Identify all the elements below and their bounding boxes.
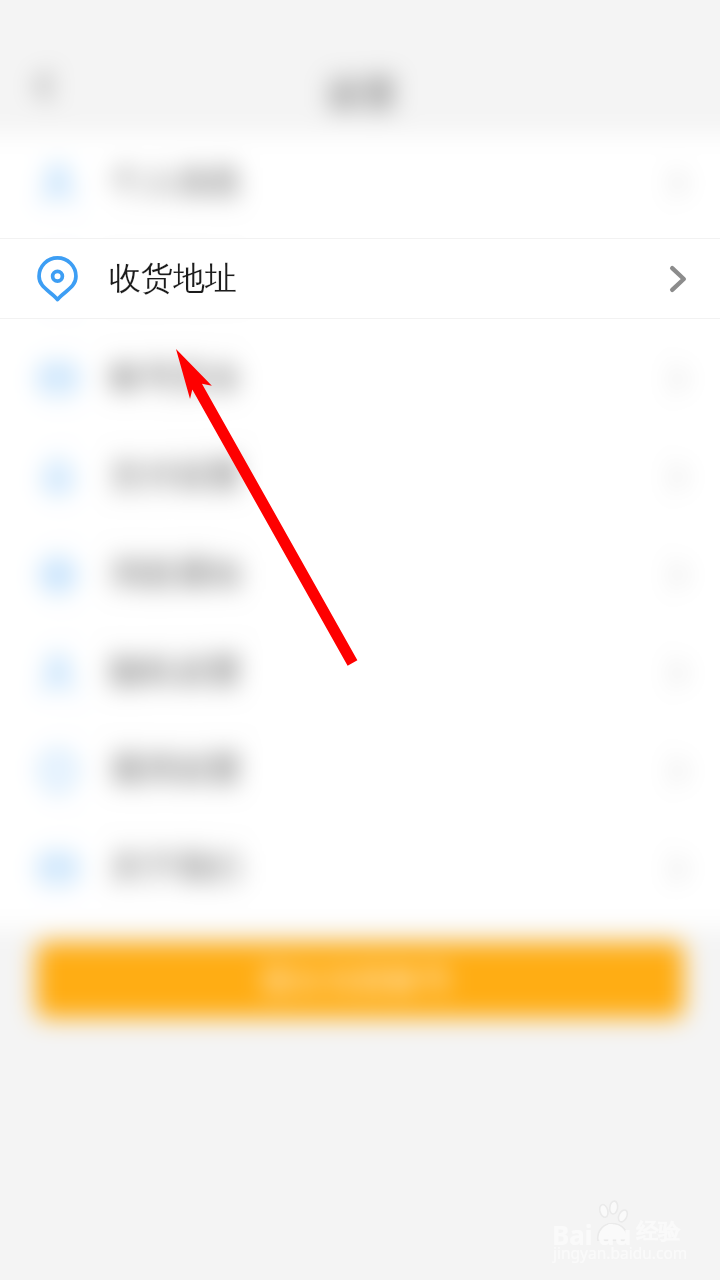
button[interactable]: Back [16,58,72,114]
staticText: 通用设置 [109,749,241,791]
button[interactable]: 收货地址 [0,238,720,319]
staticText: 退出当前账号 [260,960,452,1000]
button[interactable]: 关于我们 [0,820,720,918]
button[interactable]: 隐私设置 [0,624,720,722]
staticText: 隐私设置 [109,651,241,693]
staticText: 设置 [326,71,398,116]
staticText: 支付设置 [109,455,241,497]
staticText: 个人信息 [109,161,241,203]
button[interactable]: 消息通知 [0,526,720,624]
button[interactable]: 退出当前账号 [36,942,684,1018]
button[interactable]: 账号安全 [0,330,720,428]
staticText: 收货地址 [109,258,237,298]
button[interactable]: 通用设置 [0,722,720,820]
staticText: 收货地址 [109,259,241,301]
staticText: 关于我们 [109,847,241,889]
staticText: 消息通知 [109,553,241,595]
button[interactable]: 个人信息 [0,134,720,232]
button[interactable]: 收货地址 [0,232,720,330]
button[interactable]: 支付设置 [0,428,720,526]
staticText: 账号安全 [109,357,241,399]
staticText: du [598,1217,632,1252]
